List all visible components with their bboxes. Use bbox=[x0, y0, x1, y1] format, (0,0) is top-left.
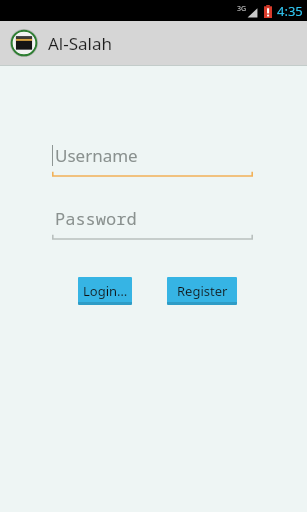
staticText: 3G bbox=[237, 4, 247, 14]
button[interactable]: Username bbox=[52, 144, 253, 177]
staticText: Username bbox=[55, 144, 138, 167]
staticText: Password bbox=[55, 207, 137, 230]
staticText: Al-Salah bbox=[48, 32, 113, 55]
button[interactable]: Register bbox=[167, 277, 237, 305]
staticText: 4:35 bbox=[277, 2, 303, 20]
button[interactable]: Login… bbox=[78, 277, 132, 305]
staticText: Login… bbox=[83, 282, 128, 300]
staticText: Register bbox=[177, 282, 228, 300]
button[interactable]: Password bbox=[52, 207, 253, 240]
